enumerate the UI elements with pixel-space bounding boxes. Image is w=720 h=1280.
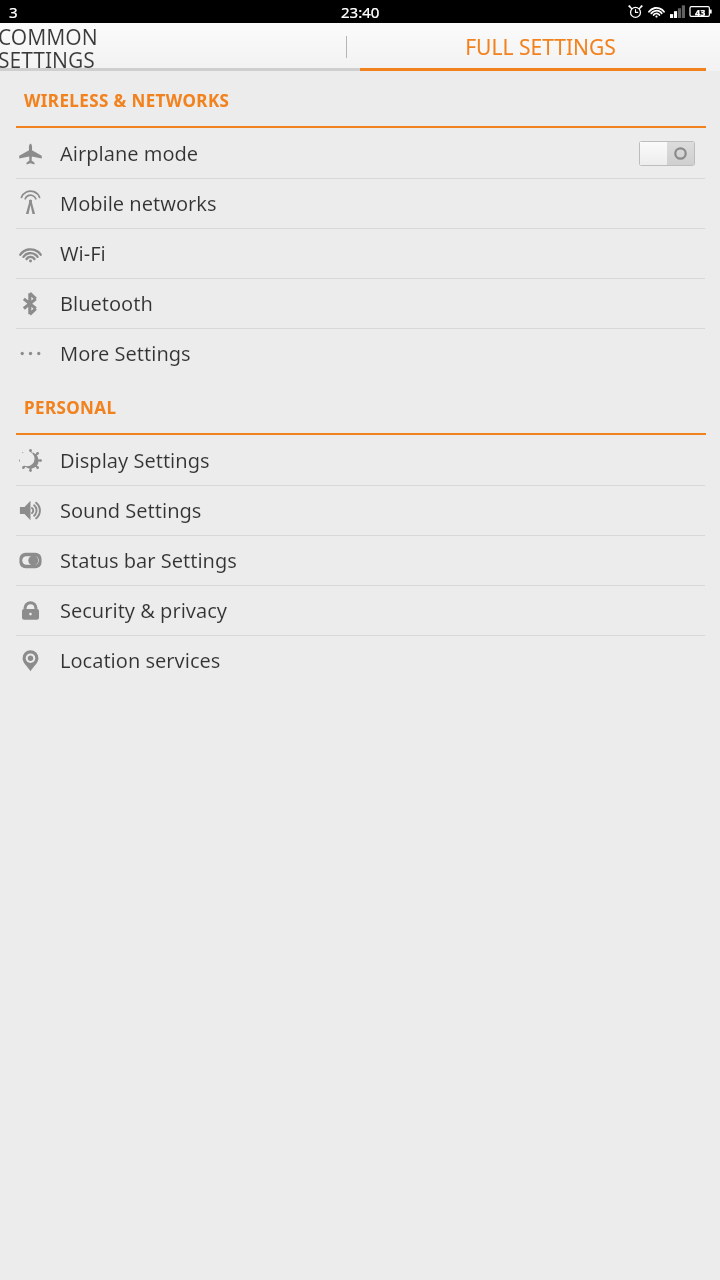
button[interactable]: COMMON SETTINGS [0, 23, 360, 71]
button[interactable]: More Settings [0, 329, 720, 378]
button[interactable]: FULL SETTINGS [360, 23, 720, 71]
staticText: WIRELESS & NETWORKS [24, 89, 230, 112]
staticText: Wi-Fi [60, 240, 106, 267]
staticText: Mobile networks [60, 190, 217, 217]
staticText: 3 [9, 2, 18, 22]
staticText: Display Settings [60, 447, 210, 474]
staticText: COMMON SETTINGS [0, 23, 98, 71]
staticText: Status bar Settings [60, 547, 237, 574]
staticText: Location services [60, 647, 221, 674]
staticText: More Settings [60, 340, 191, 367]
button[interactable]: Airplane mode [0, 129, 720, 178]
staticText: Sound Settings [60, 497, 202, 524]
staticText: PERSONAL [24, 396, 117, 419]
staticText: 23:40 [341, 2, 380, 22]
staticText: 43 [695, 6, 706, 18]
staticText: Airplane mode [60, 140, 199, 167]
button[interactable]: Airplane mode off [640, 142, 694, 165]
button[interactable]: Sound Settings [0, 486, 720, 535]
button[interactable]: Mobile networks [0, 179, 720, 228]
button[interactable]: Location services [0, 636, 720, 685]
button[interactable]: Wi-Fi [0, 229, 720, 278]
staticText: FULL SETTINGS [465, 33, 616, 62]
button[interactable]: Bluetooth [0, 279, 720, 328]
button[interactable]: Display Settings [0, 436, 720, 485]
button[interactable]: Status bar Settings [0, 536, 720, 585]
staticText: Bluetooth [60, 290, 153, 317]
button[interactable]: Security & privacy [0, 586, 720, 635]
staticText: Security & privacy [60, 597, 227, 624]
